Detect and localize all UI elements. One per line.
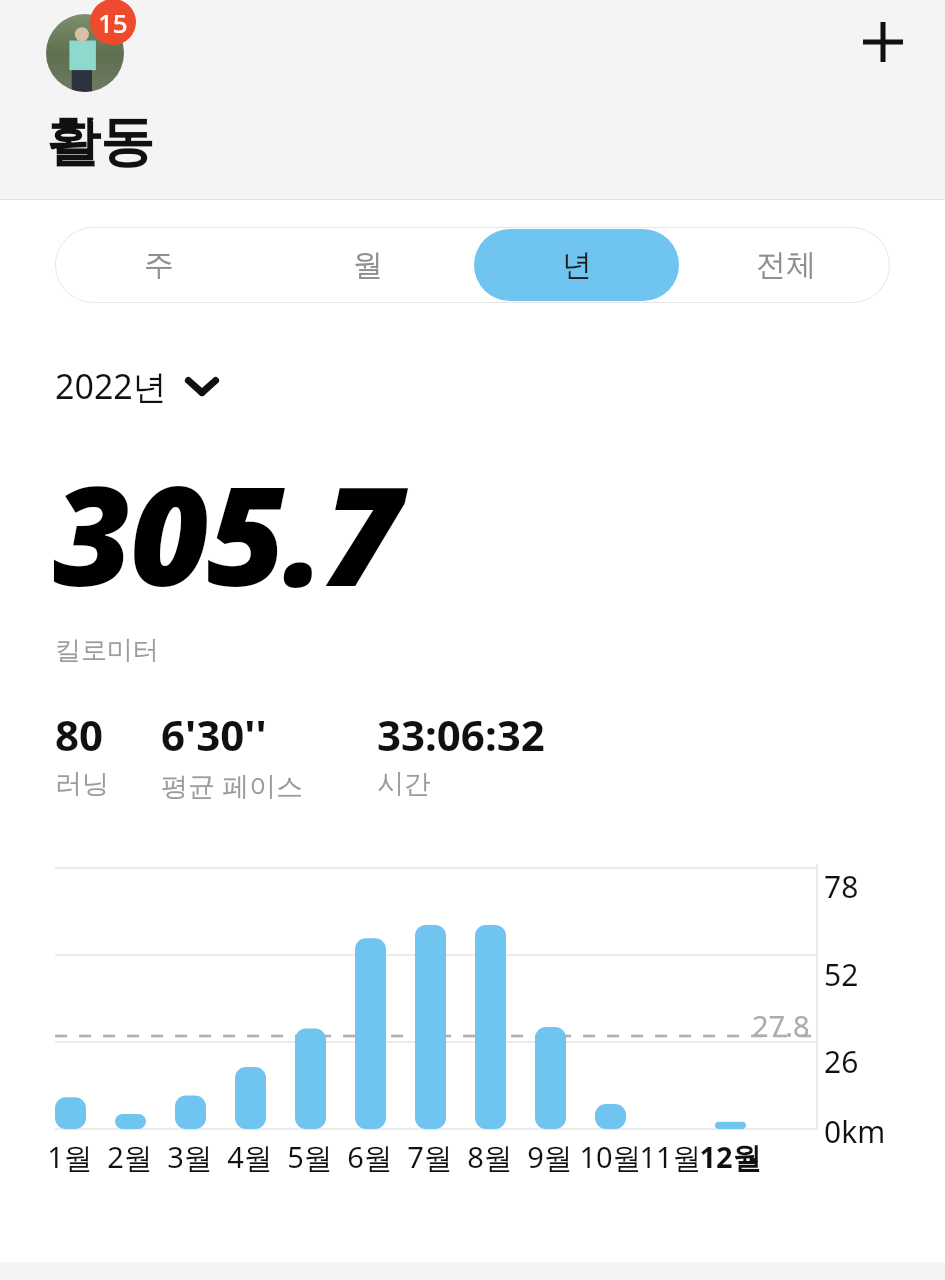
button[interactable]: 6'30'' <box>161 706 377 804</box>
button[interactable]: 9월 <box>518 1137 582 1177</box>
staticText: 305.7 <box>53 441 401 626</box>
button[interactable]: 6월 <box>338 1137 402 1177</box>
staticText: 8월 <box>467 1137 513 1177</box>
button[interactable]: 2월 <box>98 1137 162 1177</box>
staticText: 년 <box>562 246 592 284</box>
staticText: 2월 <box>107 1137 153 1177</box>
button[interactable]: Add activity <box>845 4 921 80</box>
staticText: 3월 <box>167 1137 213 1177</box>
staticText: 주 <box>144 246 174 284</box>
staticText: 활동 <box>46 108 154 176</box>
button[interactable]: 2022년 <box>55 361 219 411</box>
staticText: 1월 <box>47 1137 93 1177</box>
button[interactable]: 주 <box>57 229 261 301</box>
staticText: 월 <box>353 246 383 284</box>
staticText: 6월 <box>347 1137 393 1177</box>
staticText: 4월 <box>227 1137 273 1177</box>
staticText: 7월 <box>407 1137 453 1177</box>
staticText: 전체 <box>756 246 816 284</box>
staticText: 33:06:32 <box>377 706 545 763</box>
button[interactable]: 10월 <box>578 1137 642 1177</box>
button[interactable]: 3월 <box>158 1137 222 1177</box>
staticText: 9월 <box>527 1137 573 1177</box>
button[interactable]: 11월 <box>638 1137 702 1177</box>
staticText: 2022년 <box>55 363 167 409</box>
button[interactable]: 7월 <box>398 1137 462 1177</box>
staticText: 6'30'' <box>161 706 267 763</box>
staticText: 11월 <box>639 1137 702 1177</box>
button[interactable]: 8월 <box>458 1137 522 1177</box>
staticText: 평균 페이스 <box>161 767 304 804</box>
staticText: 10월 <box>579 1137 642 1177</box>
button[interactable]: 4월 <box>218 1137 282 1177</box>
button[interactable]: 12월 <box>698 1137 762 1177</box>
staticText: 80 <box>55 706 104 763</box>
staticText: 0km <box>824 1111 886 1152</box>
staticText: 78 <box>824 866 859 907</box>
staticText: 15 <box>98 5 128 40</box>
button[interactable]: 5월 <box>278 1137 342 1177</box>
button[interactable]: 월 <box>265 229 470 301</box>
staticText: 27.8 <box>752 1006 810 1045</box>
button[interactable]: 1월 <box>38 1137 102 1177</box>
staticText: 5월 <box>287 1137 333 1177</box>
staticText: 킬로미터 <box>55 634 159 667</box>
button[interactable]: 33:06:32 <box>377 706 545 801</box>
staticText: 52 <box>824 954 859 995</box>
staticText: 26 <box>824 1041 859 1082</box>
button[interactable]: Profile <box>46 5 134 93</box>
button[interactable]: 년 <box>474 229 679 301</box>
staticText: 시간 <box>377 767 431 801</box>
button[interactable]: 80 <box>55 706 161 801</box>
button[interactable]: 전체 <box>683 229 888 301</box>
staticText: 12월 <box>699 1137 762 1177</box>
staticText: 러닝 <box>55 767 109 801</box>
